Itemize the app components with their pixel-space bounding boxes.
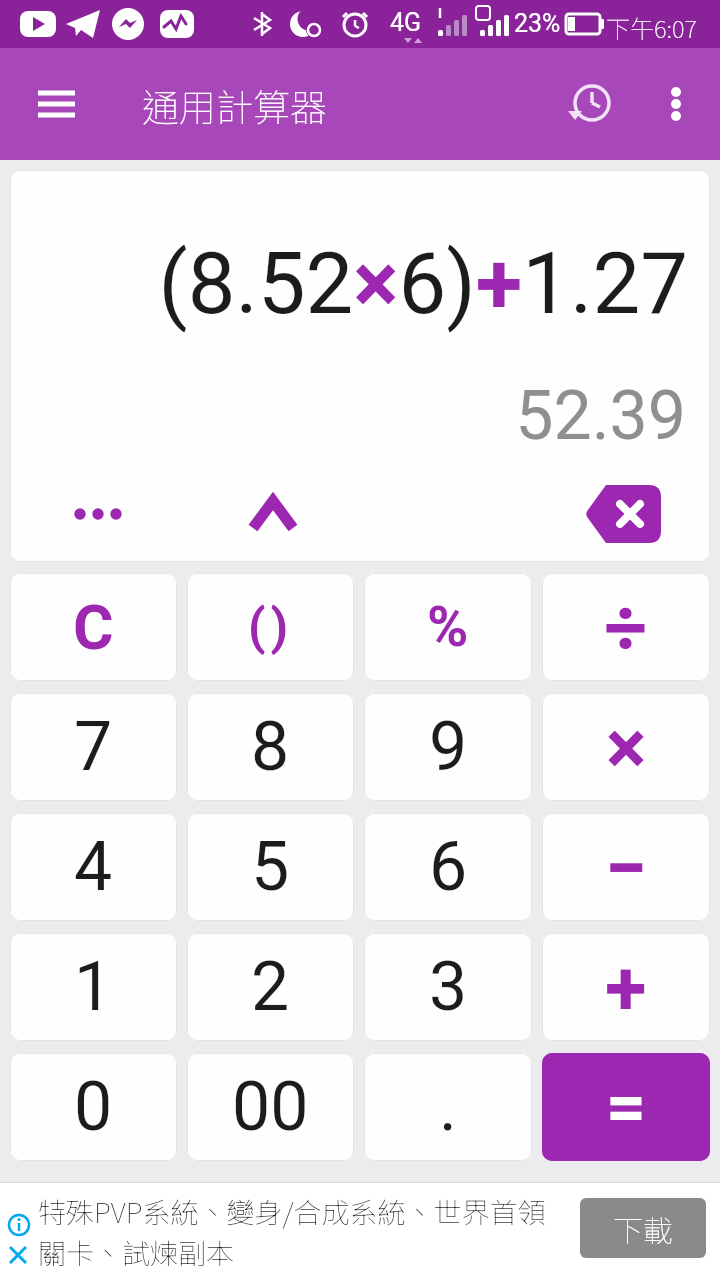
button[interactable]: 7 [10, 693, 177, 801]
staticText: + [605, 943, 647, 1032]
button[interactable]: × [542, 693, 710, 801]
button[interactable]: 4 [10, 813, 177, 921]
button[interactable]: () [187, 573, 354, 681]
staticText: 通用計算器 [142, 78, 327, 132]
button[interactable] [535, 466, 710, 562]
staticText: 關卡、試煉副本 [38, 1232, 235, 1273]
button[interactable]: 下載 [580, 1198, 706, 1258]
button[interactable]: 9 [364, 693, 532, 801]
staticText: − [605, 823, 648, 912]
staticText: 8 [251, 707, 290, 787]
staticText: 0 [74, 1067, 113, 1147]
button[interactable]: % [364, 573, 532, 681]
button[interactable]: + [542, 933, 710, 1041]
button[interactable]: 3 [364, 933, 532, 1041]
staticText: = [606, 1066, 647, 1148]
staticText: 6 [429, 827, 468, 907]
button[interactable]: − [542, 813, 710, 921]
button[interactable]: 1 [10, 933, 177, 1041]
staticText: . [439, 1067, 457, 1147]
button[interactable] [562, 73, 622, 133]
staticText: 特殊PVP系統、變身/合成系統、世界首領 [38, 1191, 546, 1232]
button[interactable]: 6 [364, 813, 532, 921]
button[interactable]: 2 [187, 933, 354, 1041]
staticText: (8.52×6)+1.27 [10, 234, 688, 334]
button[interactable]: ÷ [542, 573, 710, 681]
staticText: 23% [514, 9, 561, 38]
button[interactable]: 8 [187, 693, 354, 801]
staticText: ÷ [604, 583, 648, 672]
button[interactable]: = [542, 1053, 710, 1161]
button[interactable] [10, 466, 185, 562]
staticText: 3 [429, 947, 468, 1027]
button[interactable]: C [10, 573, 177, 681]
staticText: % [427, 594, 469, 660]
staticText: × [606, 703, 647, 792]
staticText: 4G [390, 8, 422, 37]
staticText: 下載 [613, 1207, 673, 1250]
staticText: 下午6:07 [606, 10, 698, 45]
button[interactable] [185, 466, 360, 562]
staticText: () [248, 598, 294, 657]
button[interactable]: 5 [187, 813, 354, 921]
staticText: 4 [74, 827, 113, 907]
staticText: 00 [232, 1067, 309, 1147]
staticText: 5 [251, 827, 290, 907]
staticText: C [73, 591, 114, 664]
button[interactable] [648, 82, 704, 138]
button[interactable] [22, 76, 92, 132]
staticText: 1 [74, 947, 113, 1027]
staticText: 9 [429, 707, 468, 787]
staticText: 52.39 [10, 376, 686, 456]
button[interactable]: . [364, 1053, 532, 1161]
button[interactable]: 00 [187, 1053, 354, 1161]
button[interactable]: 0 [10, 1053, 177, 1161]
staticText: 7 [74, 707, 113, 787]
staticText: 2 [251, 947, 290, 1027]
